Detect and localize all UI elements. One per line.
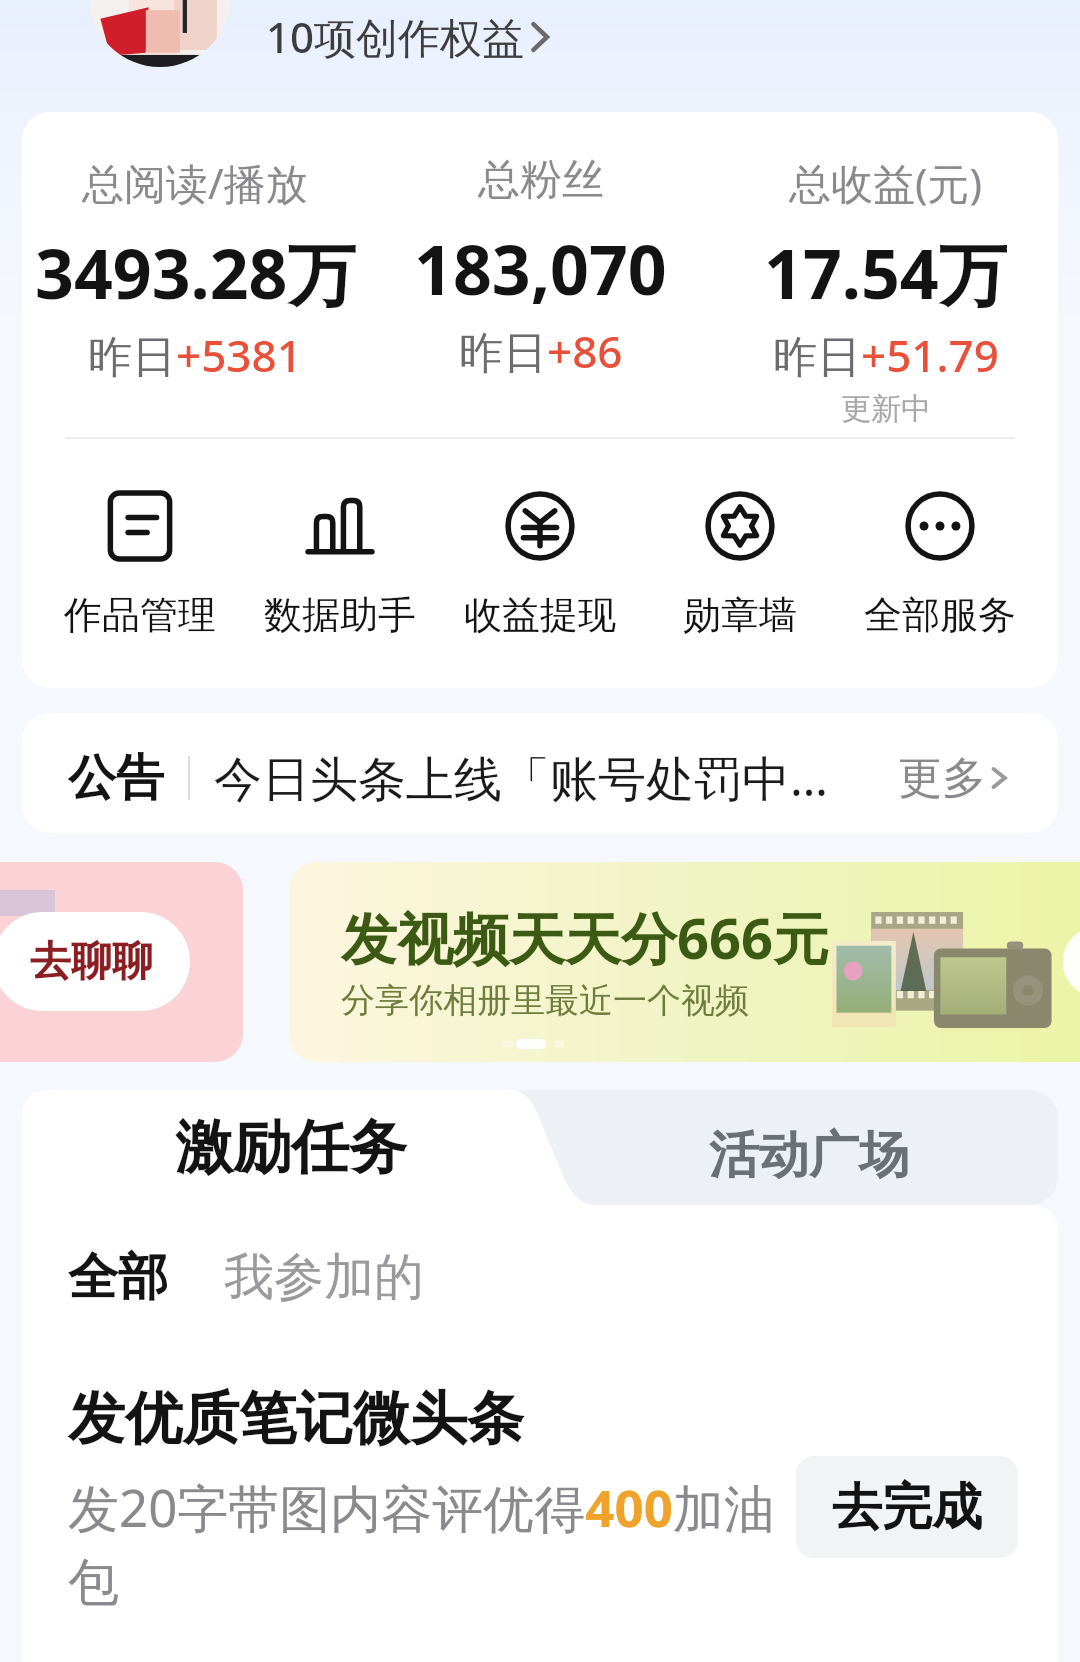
staticText: 今日头条上线「账号处罚中…	[214, 745, 888, 811]
button[interactable]: 活动广场	[560, 1098, 1058, 1213]
staticText: 总收益(元)	[789, 154, 983, 211]
staticText: 17.54万	[764, 226, 1007, 319]
staticText: 勋章墙	[683, 591, 797, 639]
button[interactable]: 总收益(元)	[713, 154, 1058, 428]
staticText: 昨日+51.79	[773, 325, 999, 385]
button[interactable]: 勋章墙	[640, 484, 840, 639]
button[interactable]: 全部	[68, 1246, 168, 1309]
staticText: 我参加的	[224, 1246, 424, 1309]
staticText: 作品管理	[64, 591, 216, 639]
staticText: 去完成	[832, 1476, 982, 1539]
button[interactable]: 公告	[22, 713, 1058, 833]
button[interactable]: 去完成	[796, 1456, 1018, 1558]
button[interactable]: 10项创作权益	[266, 8, 551, 65]
staticText: 激励任务	[175, 1111, 407, 1184]
staticText: 更新中	[841, 390, 931, 428]
staticText: 全部	[68, 1246, 168, 1309]
button[interactable]: 全部服务	[840, 484, 1040, 639]
staticText: 183,070	[414, 222, 667, 315]
button[interactable]: 去聊聊	[0, 862, 243, 1062]
staticText: 更多	[898, 751, 986, 806]
staticText: 活动广场	[709, 1124, 909, 1187]
button[interactable]: 数据助手	[240, 484, 440, 639]
button[interactable]: 激励任务	[35, 1090, 547, 1205]
staticText: 分享你相册里最近一个视频	[341, 979, 749, 1022]
staticText: 3493.28万	[35, 226, 356, 319]
staticText: 10项创作权益	[266, 8, 525, 65]
staticText: 去聊聊	[30, 936, 153, 988]
button[interactable]: 总阅读/播放	[22, 154, 368, 385]
button[interactable]: 作品管理	[40, 484, 240, 639]
staticText: 发视频天天分666元	[341, 899, 830, 975]
button[interactable]: Avatar	[89, 0, 231, 67]
staticText: 数据助手	[264, 591, 416, 639]
staticText: 昨日+5381	[88, 325, 302, 385]
staticText: 发20字带图内容评优得400加油包	[68, 1472, 790, 1615]
button[interactable]: 发视频天天分666元	[289, 862, 1080, 1062]
staticText: 收益提现	[464, 591, 616, 639]
button[interactable]: 收益提现	[440, 484, 640, 639]
staticText: 全部服务	[864, 591, 1016, 639]
button[interactable]: 总粉丝	[368, 154, 713, 381]
staticText: 昨日+86	[459, 321, 623, 381]
staticText: 公告	[68, 748, 164, 808]
button[interactable]: 我参加的	[224, 1246, 424, 1309]
staticText: 总阅读/播放	[82, 154, 308, 211]
button[interactable]: 发优质笔记微头条	[68, 1383, 1018, 1615]
staticText: 发优质笔记微头条	[68, 1383, 524, 1455]
staticText: 总粉丝	[478, 154, 604, 207]
